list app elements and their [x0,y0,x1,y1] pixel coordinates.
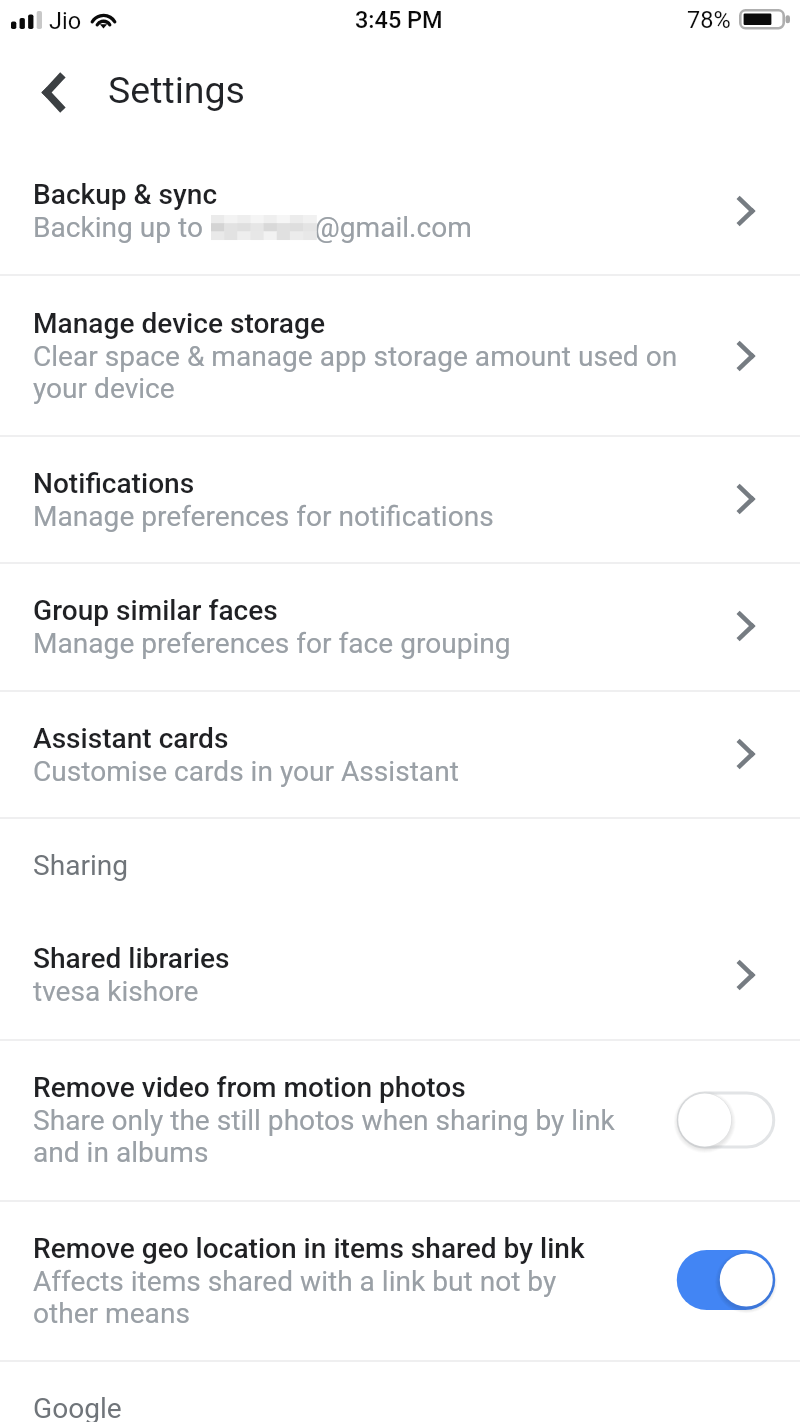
staticText: Share only the still photos when sharing… [33,1104,621,1168]
button[interactable]: Manage device storage [0,276,800,435]
staticText: Settings [108,68,245,112]
staticText: Affects items shared with a link but not… [33,1265,621,1329]
staticText: 78% [687,6,731,34]
button[interactable]: Group similar faces [0,563,800,689]
staticText: Manage device storage [33,307,325,340]
staticText: Notifications [33,467,195,500]
staticText: Google [33,1392,122,1422]
button[interactable]: Remove video from motion photos [0,1040,800,1199]
staticText: Manage preferences for face grouping [33,627,511,660]
button[interactable]: Backup & sync [0,147,800,275]
staticText: 3:45 PM [355,6,443,34]
staticText: Customise cards in your Assistant [33,755,459,788]
button[interactable]: Switch off [670,1080,782,1160]
staticText: Jio [49,7,82,35]
staticText: Clear space & manage app storage amount … [33,340,690,404]
staticText: Assistant cards [33,722,229,755]
button[interactable]: Switch on [670,1240,782,1320]
button[interactable]: Notifications [0,436,800,562]
staticText: Backup & sync [33,178,218,211]
button[interactable]: Assistant cards [0,691,800,817]
button[interactable]: Remove geo location in items shared by l… [0,1201,800,1359]
staticText: Remove video from motion photos [33,1071,466,1104]
staticText: Sharing [33,849,129,882]
staticText: Manage preferences for notifications [33,500,494,533]
button[interactable]: Shared libraries [0,911,800,1038]
button[interactable]: Back [25,64,82,121]
staticText: Backing up to @gmail.com [33,211,472,244]
staticText: tvesa kishore [33,975,199,1008]
staticText: Shared libraries [33,942,230,975]
staticText: Group similar faces [33,594,278,627]
staticText: Remove geo location in items shared by l… [33,1232,585,1265]
